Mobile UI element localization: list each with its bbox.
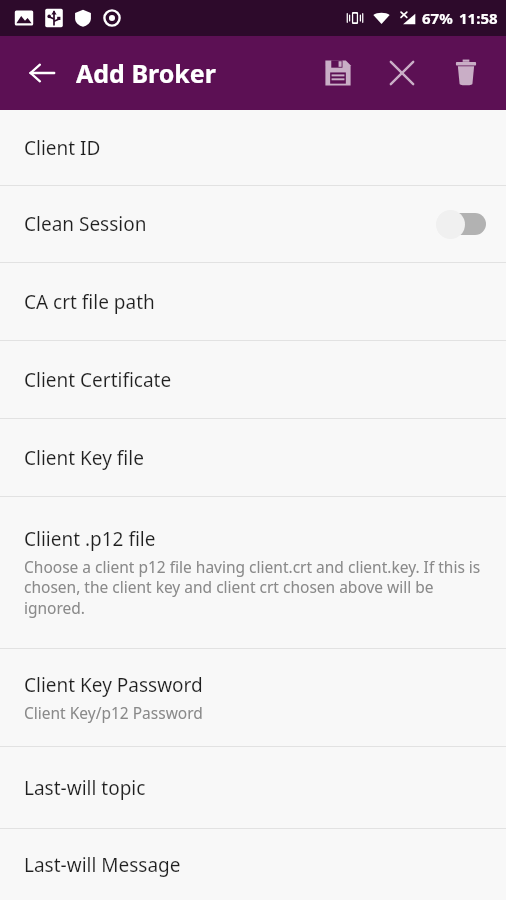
staticText: 67% — [422, 8, 453, 28]
staticText: Client Key Password — [24, 672, 203, 698]
staticText: Choose a client p12 file having client.c… — [24, 556, 486, 619]
staticText: CA crt file path — [24, 289, 155, 315]
staticText: Add Broker — [76, 56, 216, 90]
button[interactable]: Client Certificate — [0, 341, 506, 418]
staticText: Client Key file — [24, 445, 144, 471]
button[interactable]: Client Key file — [0, 419, 506, 496]
button[interactable]: Save — [310, 45, 366, 101]
button[interactable]: CA crt file path — [0, 263, 506, 340]
button[interactable]: Back — [14, 45, 70, 101]
staticText: Cliient .p12 file — [24, 526, 156, 552]
button[interactable]: Delete — [438, 45, 494, 101]
staticText: Clean Session — [24, 211, 147, 237]
staticText: Last-will Message — [24, 852, 181, 878]
button[interactable]: Cancel — [374, 45, 430, 101]
button[interactable]: Last-will Message — [0, 829, 506, 900]
button[interactable]: Last-will topic — [0, 747, 506, 828]
staticText: 11:58 — [459, 8, 498, 28]
staticText: Client Key/p12 Password — [24, 702, 203, 723]
staticText: Client Certificate — [24, 367, 172, 393]
button[interactable]: Clean Session — [0, 186, 506, 262]
staticText: Client ID — [24, 135, 101, 161]
button[interactable]: Client ID — [0, 110, 506, 185]
button[interactable]: Client Key Password — [0, 649, 506, 746]
staticText: Last-will topic — [24, 775, 146, 801]
button[interactable]: Cliient .p12 file — [0, 497, 506, 648]
